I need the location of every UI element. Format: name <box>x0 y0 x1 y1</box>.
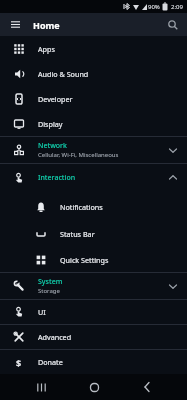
staticText: Notifications <box>60 202 103 212</box>
staticText: Donate <box>38 357 63 367</box>
staticText: Storage <box>38 287 60 295</box>
staticText: $ <box>16 357 22 367</box>
staticText: Network <box>38 141 67 151</box>
button[interactable] <box>74 374 114 400</box>
staticText: Apps <box>38 44 55 54</box>
staticText: Audio & Sound <box>38 69 89 79</box>
button[interactable] <box>21 374 61 400</box>
button[interactable]: Quick Settings <box>0 247 187 272</box>
button[interactable]: $ <box>0 350 187 374</box>
button[interactable]: Advanced <box>0 325 187 349</box>
staticText: Home <box>33 19 60 31</box>
staticText: Cellular, Wi-Fi, Miscellaneous <box>38 151 119 159</box>
button[interactable]: Audio & Sound <box>0 61 187 86</box>
staticText: UI <box>38 307 46 317</box>
staticText: Advanced <box>38 332 72 342</box>
button[interactable] <box>127 374 167 400</box>
button[interactable]: UI <box>0 300 187 324</box>
staticText: Quick Settings <box>60 255 109 265</box>
staticText: Interaction <box>38 173 76 183</box>
staticText: Status Bar <box>60 229 95 239</box>
button[interactable]: Display <box>0 111 187 136</box>
staticText: 2:09 <box>171 3 183 11</box>
button[interactable]: Developer <box>0 86 187 111</box>
button[interactable]: Apps <box>0 36 187 61</box>
staticText: Developer <box>38 94 73 104</box>
button[interactable]: Notifications <box>0 193 187 220</box>
button[interactable]: System <box>0 273 187 299</box>
button[interactable]: Network <box>0 137 187 163</box>
button[interactable] <box>159 13 187 36</box>
button[interactable]: Status Bar <box>0 220 187 247</box>
staticText: Display <box>38 119 63 129</box>
button[interactable] <box>0 13 30 36</box>
staticText: 90% <box>148 3 160 11</box>
staticText: System <box>38 277 63 287</box>
button[interactable]: Interaction <box>0 164 187 191</box>
